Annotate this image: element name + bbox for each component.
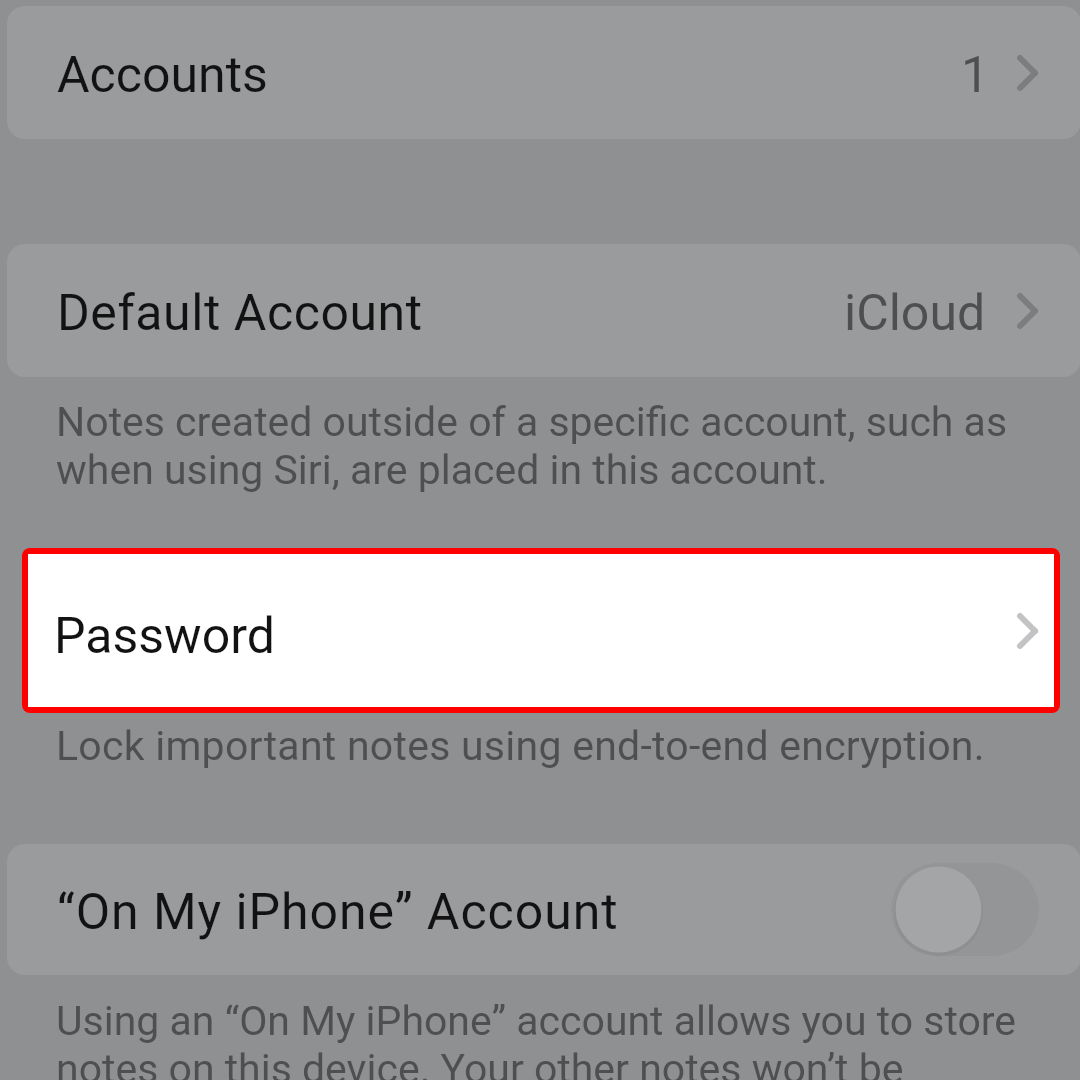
button[interactable]: Password bbox=[28, 554, 1054, 707]
staticText: Accounts bbox=[57, 46, 268, 105]
staticText: Lock important notes using end-to-end en… bbox=[56, 722, 1080, 770]
staticText: Default Account bbox=[57, 284, 423, 343]
staticText: Using an “On My iPhone” account allows y… bbox=[56, 997, 1026, 1080]
button[interactable]: Default Account bbox=[7, 244, 1080, 377]
staticText: Password bbox=[54, 607, 275, 666]
staticText: 1 bbox=[961, 46, 990, 105]
staticText: “On My iPhone” Account bbox=[57, 883, 619, 942]
button[interactable]: “On My iPhone” Account bbox=[7, 844, 1080, 975]
button[interactable]: Password bbox=[22, 548, 1060, 713]
staticText: Notes created outside of a specific acco… bbox=[56, 398, 1016, 494]
button[interactable]: On My iPhone Account toggle, off bbox=[891, 863, 1039, 956]
staticText: iCloud bbox=[844, 284, 986, 343]
button[interactable]: Accounts bbox=[7, 6, 1080, 139]
